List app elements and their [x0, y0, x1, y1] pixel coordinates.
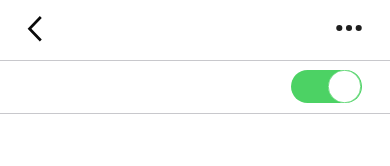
button[interactable]: Back [11, 5, 59, 53]
button[interactable]: Toggle, on [291, 70, 362, 103]
button[interactable]: More options [325, 4, 373, 52]
button[interactable]: Toggle, on [0, 61, 390, 113]
